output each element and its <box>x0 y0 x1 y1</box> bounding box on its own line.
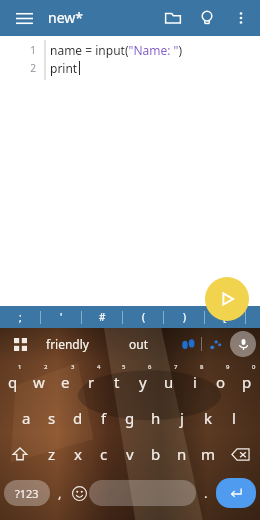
button[interactable]: Keyboard options <box>8 332 32 356</box>
button[interactable]: a <box>13 400 39 436</box>
button[interactable]: i <box>182 364 208 400</box>
staticText: p <box>242 372 252 392</box>
staticText: b <box>151 444 161 464</box>
staticText: d <box>73 408 83 428</box>
button[interactable]: l <box>221 400 247 436</box>
button[interactable]: Voice input <box>230 331 256 357</box>
staticText: y <box>139 372 147 392</box>
staticText: u <box>164 372 174 392</box>
staticText: l <box>232 408 236 428</box>
button[interactable]: Themes <box>202 331 228 357</box>
button[interactable]: ; <box>0 306 40 328</box>
button[interactable]: Space <box>89 480 196 506</box>
button[interactable]: s <box>39 400 65 436</box>
button[interactable]: Open file <box>156 1 190 35</box>
staticText: 1 <box>0 43 36 57</box>
staticText: ( <box>142 310 145 324</box>
button[interactable]: p <box>234 364 260 400</box>
staticText: o <box>216 372 226 392</box>
button[interactable]: q <box>0 364 26 400</box>
button[interactable]: d <box>65 400 91 436</box>
staticText: 2 <box>0 61 36 75</box>
button[interactable]: # <box>82 306 122 328</box>
staticText: m <box>201 444 216 464</box>
staticText: ' <box>60 310 63 324</box>
staticText: print <box>50 60 78 76</box>
button[interactable]: m <box>195 436 221 472</box>
staticText: name = input("Name: ") <box>50 42 183 58</box>
staticText: , <box>58 484 62 502</box>
button[interactable]: n <box>169 436 195 472</box>
button[interactable]: Run <box>205 277 249 321</box>
button[interactable]: ?123 <box>4 480 50 506</box>
button[interactable]: out <box>103 328 175 360</box>
button[interactable]: [ <box>205 306 245 328</box>
staticText: ?123 <box>15 486 39 501</box>
button[interactable]: f <box>91 400 117 436</box>
staticText: j <box>180 408 184 428</box>
staticText: c <box>100 444 108 464</box>
button[interactable]: ' <box>41 306 81 328</box>
staticText: k <box>204 408 213 428</box>
button[interactable]: h <box>143 400 169 436</box>
staticText: 4 <box>97 363 101 371</box>
button[interactable]: b <box>143 436 169 472</box>
staticText: i <box>193 372 197 392</box>
staticText: v <box>126 444 134 464</box>
staticText: friendly <box>46 336 89 352</box>
staticText: . <box>204 484 208 502</box>
button[interactable]: c <box>91 436 117 472</box>
staticText: ) <box>183 310 186 324</box>
button[interactable]: More options <box>224 1 258 35</box>
button[interactable]: k <box>195 400 221 436</box>
staticText: 7 <box>174 363 178 371</box>
staticText: 3 <box>71 363 75 371</box>
button[interactable]: ) <box>164 306 204 328</box>
button[interactable]: Stickers <box>175 331 201 357</box>
staticText: 5 <box>122 363 126 371</box>
staticText: s <box>48 408 56 428</box>
staticText: 6 <box>148 363 152 371</box>
button[interactable]: u <box>156 364 182 400</box>
staticText: f <box>101 408 107 428</box>
staticText: z <box>48 444 56 464</box>
button[interactable]: Shift <box>0 436 39 472</box>
staticText: 2 <box>44 363 48 371</box>
staticText: q <box>8 372 18 392</box>
button[interactable]: t <box>104 364 130 400</box>
button[interactable]: Menu <box>6 0 42 36</box>
button[interactable]: v <box>117 436 143 472</box>
button[interactable]: j <box>169 400 195 436</box>
staticText: 9 <box>226 363 230 371</box>
button[interactable]: friendly <box>32 328 103 360</box>
button[interactable]: Hints <box>190 1 224 35</box>
staticText: new* <box>48 8 83 27</box>
button[interactable]: ( <box>123 306 163 328</box>
button[interactable]: o <box>208 364 234 400</box>
button[interactable]: w <box>26 364 52 400</box>
staticText: out <box>129 336 149 352</box>
staticText: 0 <box>252 363 256 371</box>
button[interactable]: r <box>78 364 104 400</box>
button[interactable]: Emoji <box>69 472 89 514</box>
staticText: g <box>125 408 135 428</box>
button[interactable]: y <box>130 364 156 400</box>
staticText: # <box>99 310 106 324</box>
staticText: [ <box>223 310 227 324</box>
staticText: 8 <box>200 363 204 371</box>
button[interactable]: g <box>117 400 143 436</box>
button[interactable]: Enter <box>216 478 256 508</box>
button[interactable]: . <box>196 472 216 514</box>
staticText: h <box>151 408 161 428</box>
button[interactable]: e <box>52 364 78 400</box>
button[interactable] <box>246 306 260 328</box>
staticText: a <box>22 408 31 428</box>
staticText: w <box>33 372 45 392</box>
button[interactable]: z <box>39 436 65 472</box>
staticText: r <box>88 372 95 392</box>
button[interactable]: x <box>65 436 91 472</box>
button[interactable]: , <box>50 472 69 514</box>
staticText: 1 <box>18 363 22 371</box>
button[interactable]: Backspace <box>221 436 260 472</box>
staticText: ; <box>19 310 22 324</box>
